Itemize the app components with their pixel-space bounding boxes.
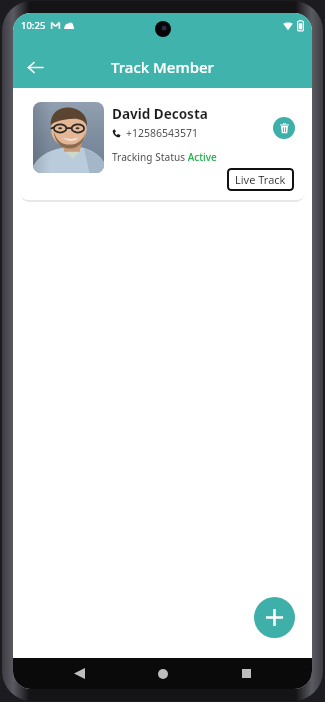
button[interactable]: Delete member [273,117,295,139]
staticText: +12586543571 [126,126,199,140]
button[interactable]: Back [19,51,51,83]
staticText: David Decosta [112,105,208,123]
staticText: Live Track [235,172,286,187]
button[interactable]: Home [146,658,180,689]
staticText: Tracking Status Active [112,150,217,164]
button[interactable]: David Decosta [19,93,306,200]
button[interactable]: Add member [254,597,295,638]
staticText: 10:25 [21,19,46,32]
button[interactable]: Recent apps [229,658,263,689]
staticText: Track Member [111,57,214,77]
button[interactable]: Back [62,658,96,689]
button[interactable]: Live Track [227,168,294,191]
